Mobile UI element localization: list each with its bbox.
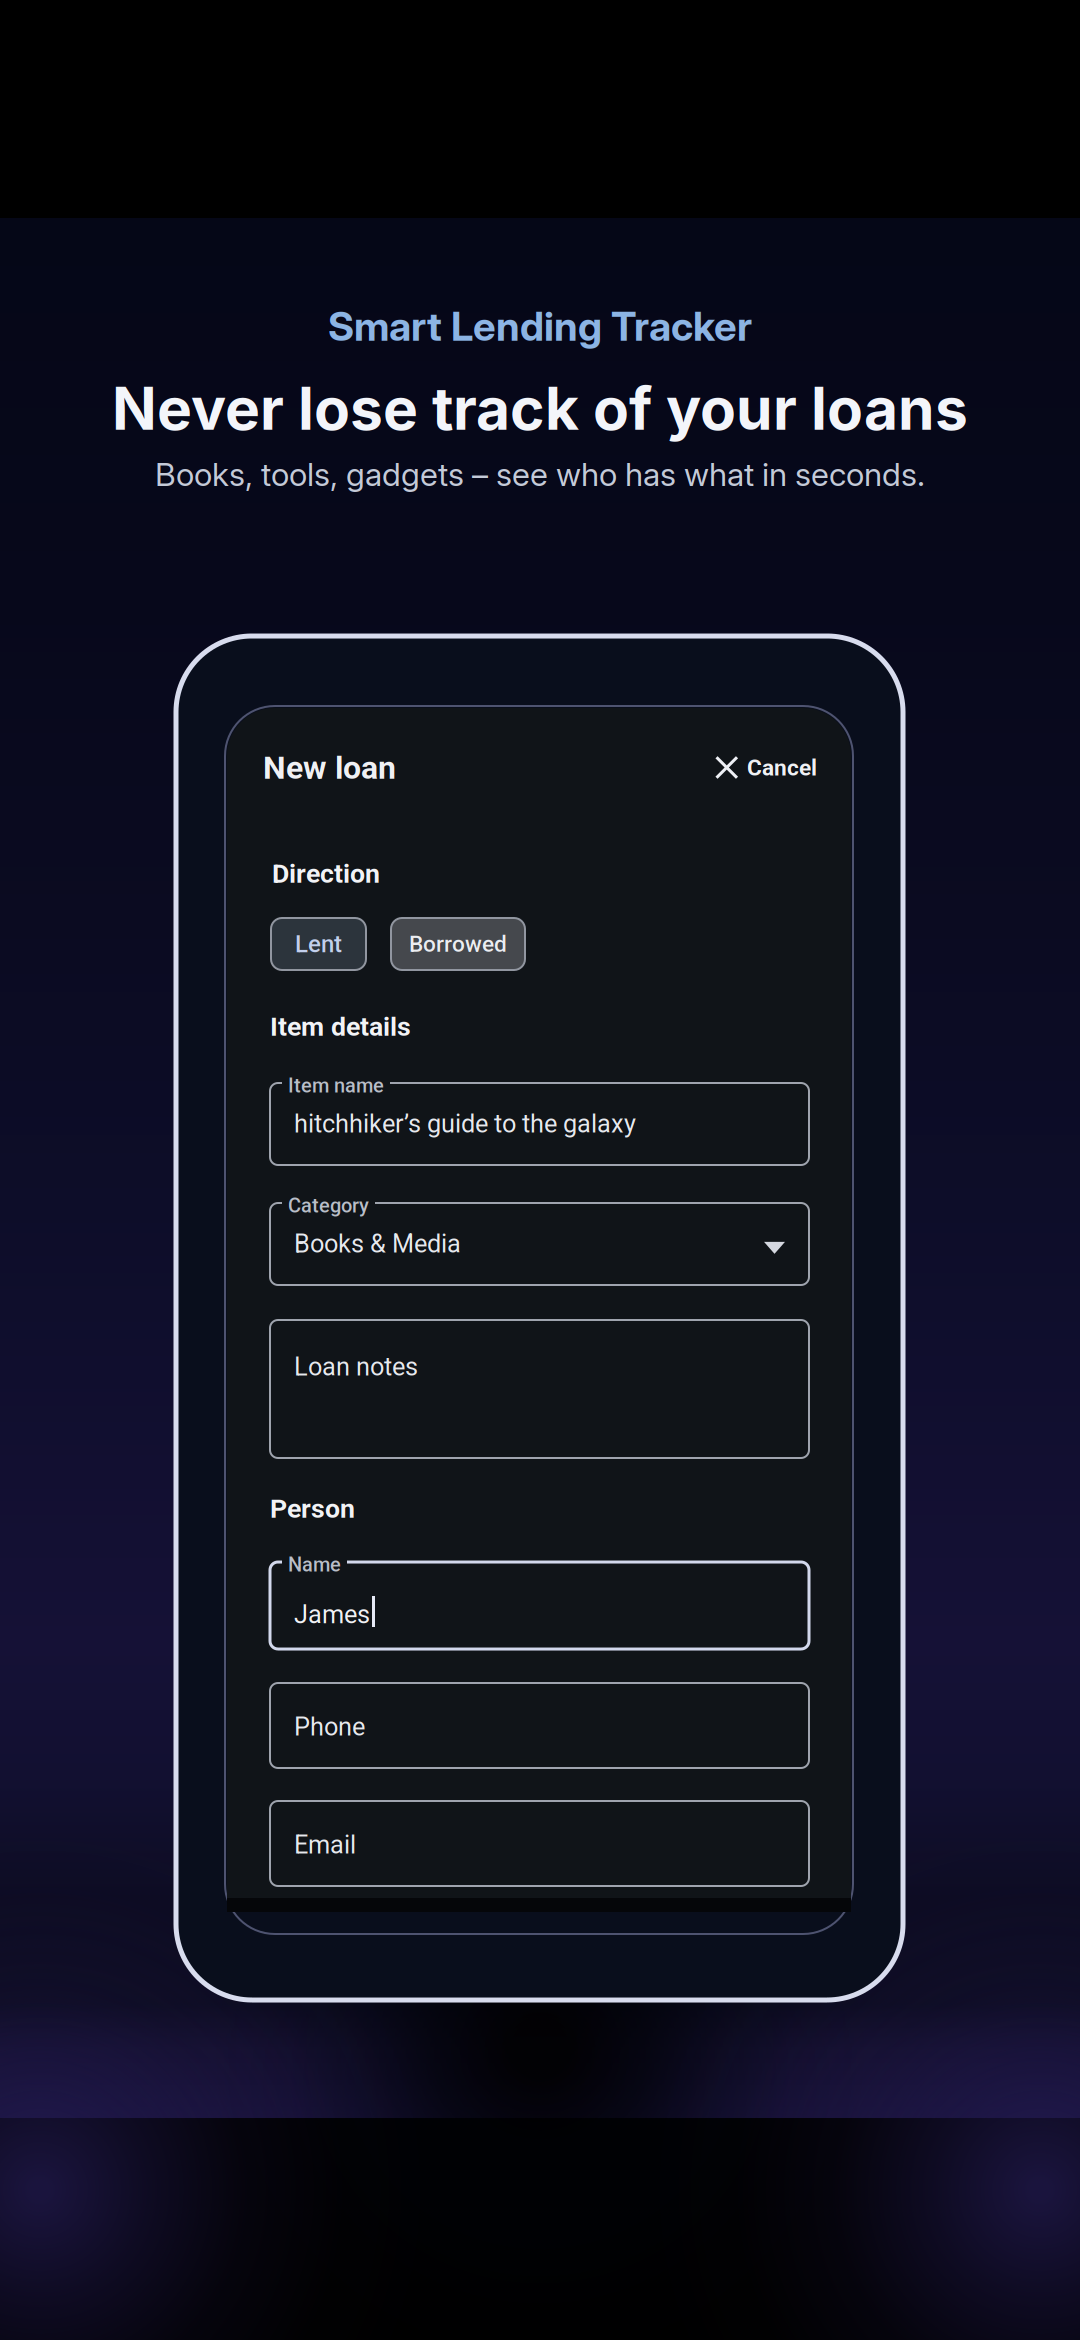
staticText: Books, tools, gadgets – see who has what… [155, 455, 925, 494]
staticText: Item name [288, 1074, 384, 1097]
staticText: Smart Lending Tracker [328, 302, 752, 350]
staticText: Item details [270, 1011, 411, 1042]
button[interactable]: Phone [270, 1683, 809, 1768]
staticText: New loan [263, 749, 396, 786]
staticText: hitchhiker’s guide to the galaxy [294, 1109, 636, 1139]
button[interactable]: Lent [271, 918, 366, 970]
staticText: Borrowed [409, 931, 507, 957]
staticText: Phone [294, 1712, 365, 1742]
button[interactable]: Books & Media [270, 1203, 809, 1285]
staticText: Lent [295, 930, 342, 958]
staticText: Loan notes [294, 1352, 418, 1382]
staticText: Direction [272, 858, 380, 889]
button[interactable]: Loan notes [270, 1320, 809, 1458]
button[interactable]: hitchhiker’s guide to the galaxy [270, 1083, 809, 1165]
staticText: Person [270, 1493, 355, 1524]
staticText: Books & Media [294, 1229, 461, 1259]
staticText: James [294, 1600, 370, 1629]
button[interactable]: James [270, 1562, 809, 1649]
button[interactable]: Cancel [715, 754, 817, 781]
button[interactable]: Email [270, 1801, 809, 1886]
staticText: Category [288, 1194, 369, 1217]
button[interactable]: Borrowed [391, 918, 525, 970]
staticText: Cancel [747, 754, 817, 781]
staticText: Email [294, 1830, 356, 1860]
staticText: Name [288, 1553, 341, 1576]
button[interactable]: New loan [263, 749, 396, 786]
staticText: Never lose track of your loans [112, 373, 968, 444]
